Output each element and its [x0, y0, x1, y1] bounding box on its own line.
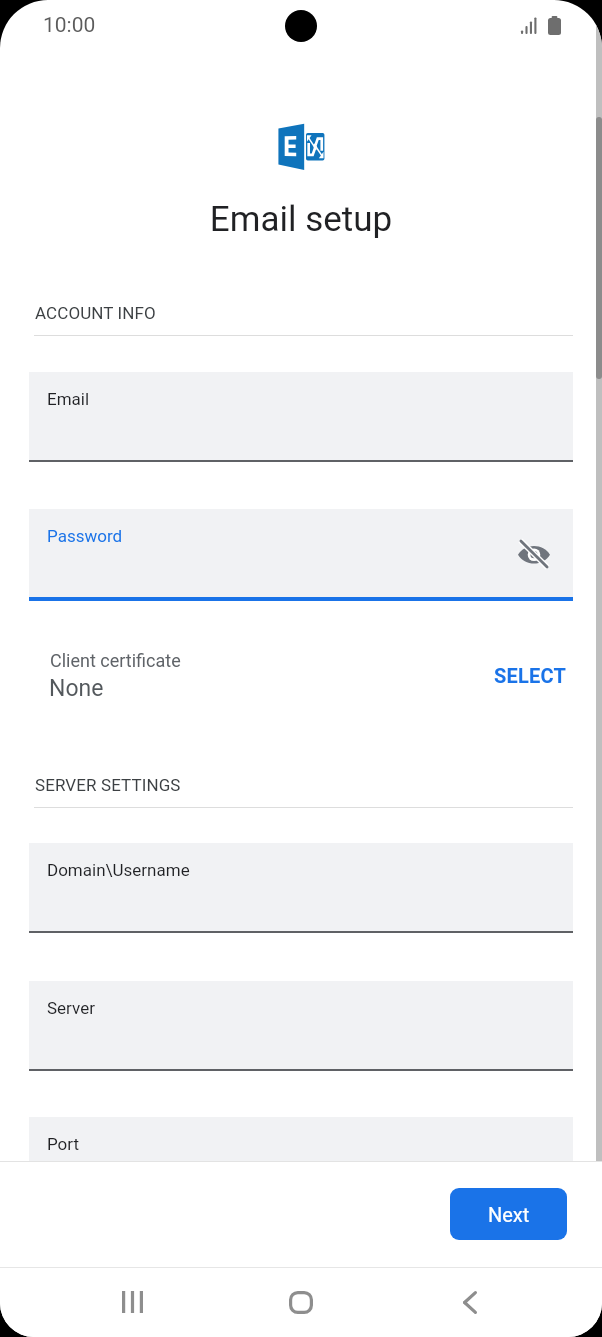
staticText: None	[49, 675, 104, 702]
staticText: 10:00	[43, 13, 96, 38]
staticText: Server	[47, 998, 95, 1018]
staticText: Email setup	[0, 199, 602, 240]
staticText: Domain\Username	[47, 860, 190, 880]
staticText: SERVER SETTINGS	[35, 775, 181, 795]
button[interactable]: Port	[29, 1117, 573, 1161]
button[interactable]: Recent apps	[96, 1278, 168, 1326]
staticText: Password	[47, 526, 123, 546]
staticText: SELECT	[494, 664, 567, 687]
staticText: Email	[47, 389, 90, 409]
button[interactable]: Password	[29, 509, 573, 601]
staticText: Port	[47, 1134, 80, 1154]
staticText: Client certificate	[50, 650, 181, 671]
button[interactable]: Back	[434, 1278, 506, 1326]
button[interactable]: Domain\Username	[29, 843, 573, 935]
button[interactable]: Home	[265, 1278, 337, 1326]
button[interactable]: Server	[29, 981, 573, 1073]
button[interactable]: Client certificate	[29, 646, 573, 722]
staticText: ACCOUNT INFO	[35, 303, 156, 323]
staticText: Next	[488, 1203, 530, 1226]
button[interactable]: Email	[29, 372, 573, 464]
button[interactable]: Next	[450, 1188, 567, 1240]
button[interactable]: Show password	[513, 533, 555, 575]
